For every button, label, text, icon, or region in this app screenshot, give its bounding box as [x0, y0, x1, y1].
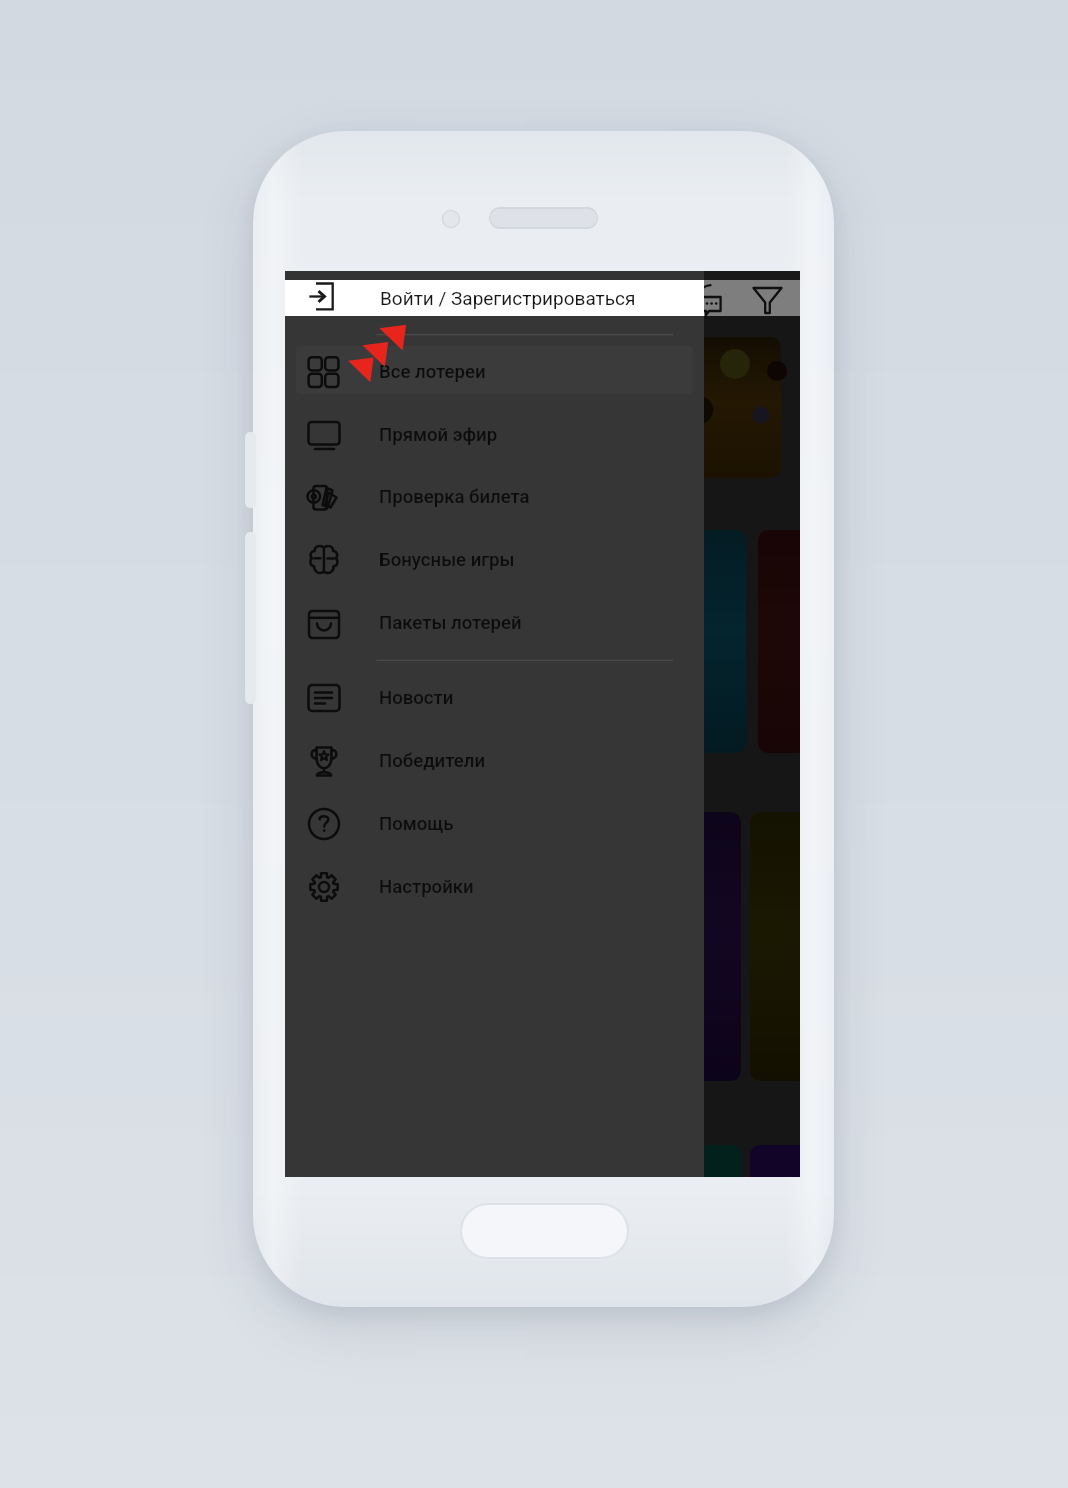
- staticText: Все лотереи: [379, 361, 486, 383]
- button[interactable]: Новости: [296, 674, 693, 722]
- button[interactable]: Прямой эфир: [296, 411, 693, 459]
- button[interactable]: Настройки: [296, 863, 693, 911]
- staticText: Бонусные игры: [379, 549, 515, 571]
- button[interactable]: Пакеты лотерей: [296, 599, 693, 647]
- staticText: Новости: [379, 687, 454, 709]
- button[interactable]: Войти: [285, 280, 704, 316]
- button[interactable]: Фильтр: [744, 280, 792, 316]
- button[interactable]: Все лотереи: [296, 348, 693, 396]
- staticText: Помощь: [379, 813, 454, 835]
- button[interactable]: Бонусные игры: [296, 536, 693, 584]
- staticText: Настройки: [379, 876, 474, 898]
- other: Войти: [301, 281, 335, 315]
- button[interactable]: Чат: [690, 280, 736, 316]
- button[interactable]: Помощь: [296, 800, 693, 848]
- staticText: Победители: [379, 750, 486, 772]
- button[interactable]: Проверка билета: [296, 473, 693, 521]
- staticText: Пакеты лотерей: [379, 612, 522, 634]
- staticText: Проверка билета: [379, 486, 530, 508]
- staticText: Прямой эфир: [379, 424, 498, 446]
- button[interactable]: Победители: [296, 737, 693, 785]
- staticText: Войти / Зарегистрироваться: [380, 287, 636, 309]
